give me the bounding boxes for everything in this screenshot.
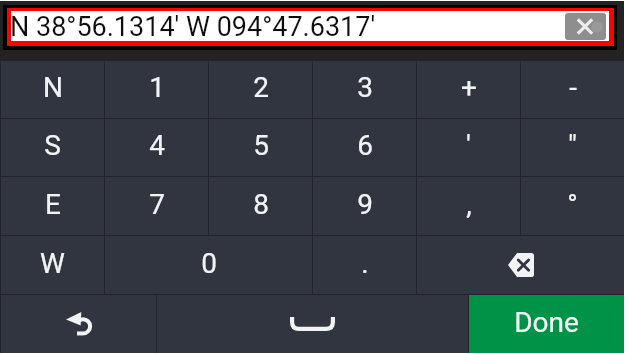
button[interactable]: 9 [313,177,416,235]
staticText: 4 [149,129,165,162]
staticText: " [568,129,577,162]
button[interactable]: 1 [105,61,208,118]
button[interactable]: Undo [1,295,156,353]
button[interactable]: Space [157,295,468,353]
button[interactable]: Backspace [417,236,624,294]
staticText: ' [466,129,471,162]
staticText: 8 [253,188,269,221]
staticText: 6 [357,129,373,162]
staticText: . [361,247,369,280]
button[interactable]: . [313,236,416,294]
button[interactable]: - [521,61,624,118]
staticText: 9 [357,188,373,221]
button[interactable]: ' [417,119,520,176]
staticText: W [40,247,65,280]
button[interactable]: + [417,61,520,118]
staticText: 1 [149,71,165,104]
button[interactable]: 3 [313,61,416,118]
staticText: , [466,188,472,221]
button[interactable]: W [1,236,104,294]
staticText: S [44,129,61,162]
button[interactable]: 2 [209,61,312,118]
button[interactable]: N 38°56.1314' W 094°47.6317' [11,11,609,41]
staticText: N 38°56.1314' W 094°47.6317' [10,11,376,41]
staticText: ° [567,188,578,221]
button[interactable]: E [1,177,104,235]
button[interactable]: 0 [105,236,312,294]
staticText: 2 [253,71,269,104]
staticText: - [569,71,577,104]
staticText: + [461,71,477,104]
button[interactable]: " [521,119,624,176]
button[interactable]: 4 [105,119,208,176]
button[interactable]: 8 [209,177,312,235]
button[interactable]: Clear text [565,13,606,40]
staticText: N [43,71,63,104]
button[interactable]: , [417,177,520,235]
staticText: 7 [149,188,165,221]
staticText: Done [514,306,579,339]
staticText: 3 [357,71,373,104]
button[interactable]: ° [521,177,624,235]
button[interactable]: 6 [313,119,416,176]
button[interactable]: Done [469,295,624,353]
button[interactable]: N [1,61,104,118]
button[interactable]: 5 [209,119,312,176]
button[interactable]: 7 [105,177,208,235]
staticText: 0 [201,247,217,280]
button[interactable]: S [1,119,104,176]
staticText: 5 [253,129,269,162]
staticText: E [45,188,61,221]
